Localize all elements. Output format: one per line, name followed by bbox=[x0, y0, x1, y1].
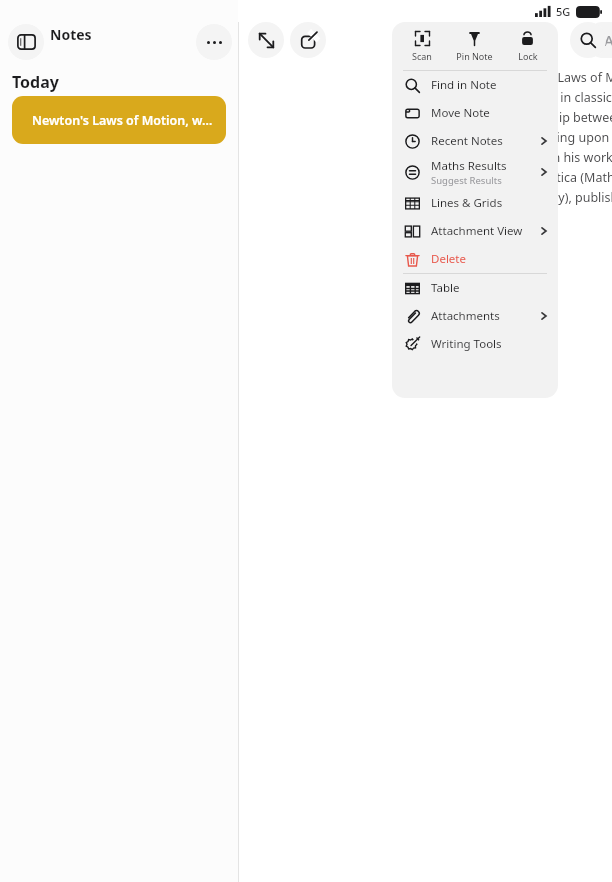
button[interactable]: Expand bbox=[248, 22, 284, 58]
button[interactable]: Attachment View bbox=[392, 217, 558, 245]
button[interactable]: Compose bbox=[290, 22, 326, 58]
staticText: Recent Notes bbox=[431, 133, 503, 149]
staticText: Maths Results bbox=[431, 158, 507, 174]
button[interactable]: Pin Note bbox=[448, 22, 501, 70]
staticText: Notes bbox=[50, 25, 92, 44]
staticText: Today bbox=[12, 71, 59, 93]
button[interactable]: Lines & Grids bbox=[392, 189, 558, 217]
staticText: Newton's Laws of Motion are three fundam… bbox=[500, 69, 612, 206]
staticText: Find in Note bbox=[431, 77, 497, 93]
staticText: Scan bbox=[412, 50, 432, 62]
button[interactable]: Lock bbox=[501, 22, 554, 70]
button[interactable]: Recent Notes bbox=[392, 127, 558, 155]
staticText: Writing Tools bbox=[431, 336, 502, 352]
button[interactable]: Table bbox=[392, 274, 558, 302]
button[interactable]: Newton's Laws of Motion, w… bbox=[12, 96, 226, 144]
button[interactable]: Delete bbox=[392, 245, 558, 273]
staticText: Newton's Laws of Motion, w… bbox=[32, 112, 213, 129]
staticText: Lines & Grids bbox=[431, 195, 503, 211]
button[interactable]: Find in Note bbox=[392, 71, 558, 99]
button[interactable]: Toggle sidebar bbox=[8, 24, 44, 60]
staticText: Pin Note bbox=[456, 50, 493, 62]
staticText: Aa bbox=[604, 30, 612, 50]
button[interactable]: Move Note bbox=[392, 99, 558, 127]
button[interactable]: Writing Tools bbox=[392, 330, 558, 358]
staticText: Table bbox=[431, 280, 460, 296]
button[interactable]: More options bbox=[196, 24, 232, 60]
staticText: Attachments bbox=[431, 308, 500, 324]
staticText: Move Note bbox=[431, 105, 490, 121]
staticText: Delete bbox=[431, 251, 466, 267]
button[interactable]: Scan bbox=[396, 22, 448, 70]
button[interactable]: Maths Results bbox=[392, 155, 558, 189]
staticText: Lock bbox=[518, 50, 538, 62]
button[interactable]: Search bbox=[570, 22, 606, 58]
staticText: Attachment View bbox=[431, 223, 523, 239]
button[interactable]: Attachments bbox=[392, 302, 558, 330]
staticText: 5G bbox=[556, 4, 571, 19]
staticText: Suggest Results bbox=[431, 174, 502, 187]
button[interactable]: Aa bbox=[591, 22, 612, 58]
